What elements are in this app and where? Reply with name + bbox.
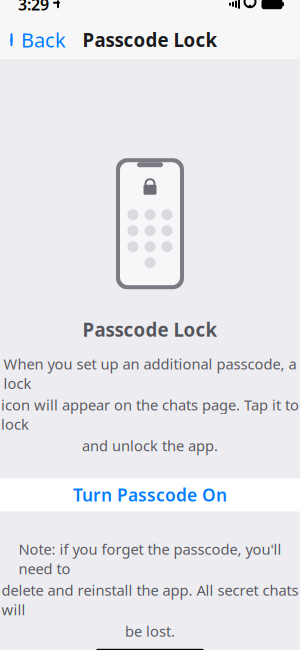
staticText: Passcode Lock [82,27,217,52]
staticText: Turn Passcode On [73,483,227,506]
staticText: When you set up an additional passcode, … [3,354,296,393]
staticText: Note: if you forget the passcode, you'll… [18,539,281,578]
button[interactable]: Back [0,18,66,61]
staticText: delete and reinstall the app. All secret… [1,580,298,619]
staticText: icon will appear on the chats page. Tap … [1,395,299,434]
staticText: Passcode Lock [82,317,217,342]
button[interactable]: Turn Passcode On [0,478,300,511]
staticText: Back [21,26,66,53]
staticText: be lost. [125,621,175,641]
staticText: 3:29 [18,0,49,15]
staticText: and unlock the app. [82,436,218,455]
